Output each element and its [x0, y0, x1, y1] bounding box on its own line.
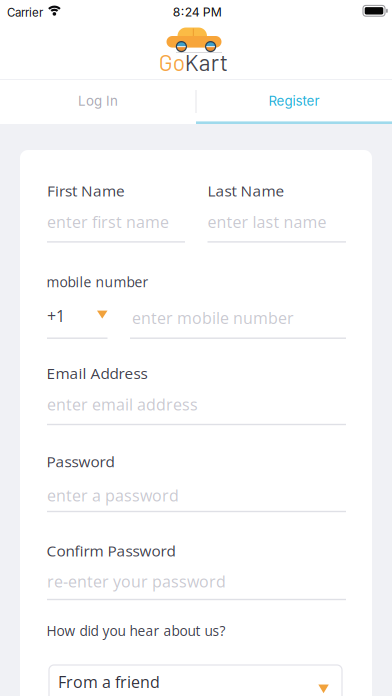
button[interactable]: re-enter your password: [47, 566, 346, 600]
staticText: mobile number: [46, 272, 148, 291]
staticText: Password: [46, 451, 114, 472]
staticText: re-enter your password: [47, 570, 226, 592]
staticText: Last Name: [207, 180, 284, 201]
staticText: enter a password: [47, 484, 179, 506]
button[interactable]: enter mobile number: [130, 303, 346, 339]
staticText: enter last name: [207, 211, 326, 233]
button[interactable]: enter email address: [47, 389, 346, 425]
staticText: Confirm Password: [46, 540, 175, 561]
staticText: First Name: [47, 180, 125, 201]
staticText: Kart: [185, 48, 228, 75]
staticText: Register: [268, 93, 319, 109]
staticText: enter first name: [47, 211, 169, 233]
staticText: enter mobile number: [132, 307, 294, 329]
staticText: From a friend: [58, 671, 160, 693]
button[interactable]: enter last name: [207, 207, 346, 242]
staticText: +1: [47, 305, 65, 327]
staticText: How did you hear about us?: [46, 621, 225, 640]
button[interactable]: Register: [196, 82, 392, 120]
staticText: Log In: [78, 93, 118, 109]
staticText: Go: [159, 48, 185, 75]
button[interactable]: enter a password: [47, 480, 346, 512]
button[interactable]: Log In: [0, 82, 196, 120]
staticText: Carrier: [7, 6, 43, 19]
button[interactable]: Country code: [47, 302, 107, 338]
button[interactable]: From a friend: [49, 665, 342, 696]
staticText: Email Address: [46, 363, 147, 384]
button[interactable]: enter first name: [47, 207, 185, 242]
staticText: 8:24 PM: [173, 5, 222, 19]
staticText: enter email address: [47, 393, 198, 415]
